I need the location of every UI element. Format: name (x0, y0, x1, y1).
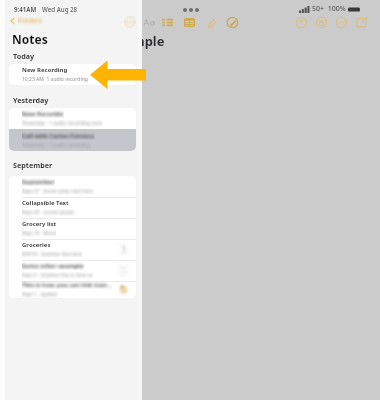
button[interactable]: More options (335, 16, 348, 29)
button[interactable]: Table (183, 16, 196, 29)
staticText: 9/9/19 Another line here (22, 251, 82, 258)
button[interactable]: New note (355, 16, 368, 29)
staticText: Yesterday 1 audio recording note (22, 120, 103, 127)
button[interactable]: Grocery list (9, 218, 136, 239)
staticText: Wed Aug 28 (42, 5, 78, 13)
button[interactable]: Checklist (161, 16, 174, 29)
staticText: Call with Carlos Fonseca (22, 132, 95, 140)
staticText: New Recording (22, 66, 68, 74)
button[interactable]: Attachment (205, 16, 218, 29)
staticText: Sept 1 update (22, 291, 58, 298)
button[interactable]: Folders (10, 16, 43, 26)
button[interactable]: Share (295, 16, 308, 29)
button[interactable]: New Recordin (9, 108, 136, 129)
staticText: 9:41AM (14, 5, 37, 13)
staticText: Yesterday (13, 95, 49, 105)
button[interactable]: Text format (143, 16, 156, 29)
button[interactable]: Call with Carlos Fonseca (9, 129, 136, 151)
button[interactable]: Multitasking controls (183, 8, 199, 12)
staticText: Folders (18, 16, 43, 26)
button[interactable]: Collapsible Text (9, 197, 136, 218)
staticText: Sept 27 Some other text here (22, 188, 94, 195)
staticText: Sample (117, 32, 165, 50)
staticText: Sept 5 Another line is here to (22, 272, 93, 279)
staticText: Groceries (22, 241, 51, 249)
button[interactable]: Lock note (315, 16, 328, 29)
button[interactable]: More (124, 16, 136, 28)
staticText: Sept 20 Lorem ipsum (22, 209, 75, 216)
staticText: 50+ 100% (312, 4, 346, 14)
staticText: Collapsible Text (22, 199, 69, 207)
button[interactable]: Groceries (9, 239, 136, 260)
staticText: September (22, 178, 55, 186)
staticText: September (13, 160, 53, 170)
staticText: Sept 19 More (22, 230, 56, 237)
staticText: Notes (12, 31, 48, 47)
staticText: New Recordin (22, 110, 64, 118)
staticText: Some other example (22, 262, 84, 270)
staticText: This is how you can link tran… (22, 281, 112, 289)
button[interactable]: New Recording (9, 64, 136, 85)
button[interactable]: September (9, 176, 136, 197)
button[interactable]: Markup (226, 16, 239, 29)
staticText: Grocery list (22, 220, 57, 228)
staticText: 10:23 AM 1 audio recording (22, 76, 88, 83)
staticText: Today (13, 51, 35, 61)
button[interactable]: This is how you can link tran… (9, 281, 136, 298)
button[interactable]: Some other example (9, 260, 136, 281)
staticText: Yesterday 1 audio recording (22, 142, 91, 149)
